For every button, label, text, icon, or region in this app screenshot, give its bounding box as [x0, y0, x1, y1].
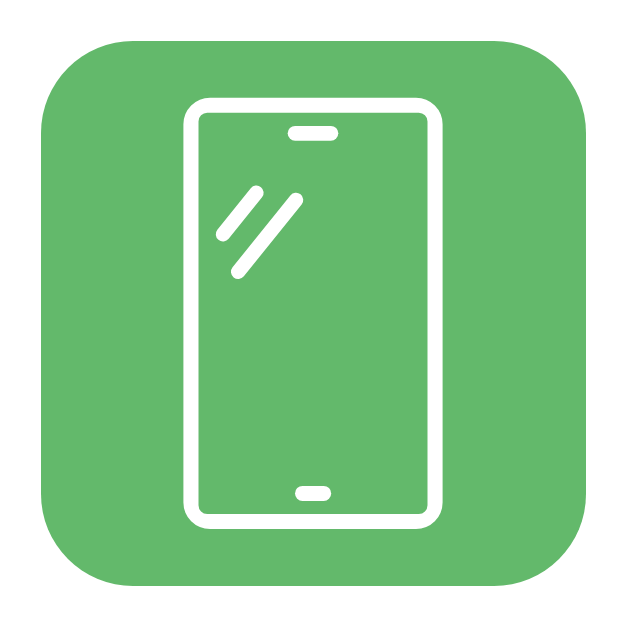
- button[interactable]: Smartphone app: [0, 0, 626, 626]
